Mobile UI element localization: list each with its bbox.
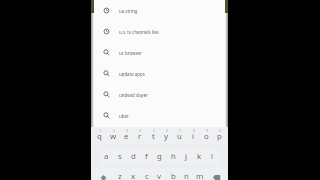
staticText: q (97, 131, 102, 142)
staticText: f (145, 151, 148, 162)
button[interactable]: n (180, 168, 193, 180)
button[interactable]: 0 (213, 127, 226, 144)
staticText: k (197, 151, 202, 162)
button[interactable]: Backspace (206, 168, 226, 180)
staticText: uc browser (119, 50, 142, 56)
button[interactable]: h (167, 148, 180, 165)
staticText: 7 (179, 128, 181, 133)
staticText: 9 (206, 128, 208, 133)
button[interactable]: f (140, 148, 153, 165)
button[interactable]: l (206, 148, 219, 165)
button[interactable]: ua string (94, 0, 225, 21)
staticText: g (157, 151, 162, 162)
staticText: m (196, 171, 204, 180)
button[interactable]: x (127, 168, 140, 180)
staticText: o (204, 131, 209, 142)
button[interactable]: m (193, 168, 206, 180)
staticText: c (145, 171, 149, 180)
staticText: 5 (153, 128, 155, 133)
staticText: p (217, 131, 222, 142)
staticText: update apps (119, 71, 145, 77)
button[interactable]: 7 (173, 127, 186, 144)
staticText: y (164, 131, 169, 142)
staticText: j (185, 151, 188, 162)
button[interactable]: 8 (187, 127, 200, 144)
staticText: d (131, 151, 136, 162)
button[interactable]: uc browser (94, 42, 225, 63)
button[interactable]: c (140, 168, 153, 180)
staticText: 8 (193, 128, 195, 133)
button[interactable]: a (100, 148, 113, 165)
button[interactable]: 2 (107, 127, 120, 144)
staticText: i (192, 131, 195, 142)
button[interactable]: s (113, 148, 126, 165)
staticText: uber (119, 113, 129, 119)
staticText: ua string (119, 8, 138, 14)
staticText: w (110, 131, 117, 142)
button[interactable]: z (113, 168, 126, 180)
button[interactable]: 4 (133, 127, 146, 144)
staticText: v (157, 171, 162, 180)
staticText: a (104, 151, 109, 162)
staticText: e (124, 131, 129, 142)
button[interactable]: j (180, 148, 193, 165)
button[interactable]: 5 (147, 127, 160, 144)
staticText: 3 (126, 128, 128, 133)
button[interactable]: uber (94, 105, 225, 126)
staticText: 6 (166, 128, 168, 133)
staticText: u.s. tv channels live (119, 29, 159, 35)
staticText: n (184, 171, 189, 180)
button[interactable]: u.s. tv channels live (94, 21, 225, 42)
button[interactable]: g (153, 148, 166, 165)
staticText: z (118, 171, 122, 180)
staticText: undead slayer (119, 92, 149, 98)
staticText: 0 (219, 128, 221, 133)
button[interactable]: k (193, 148, 206, 165)
staticText: h (171, 151, 176, 162)
staticText: s (118, 151, 122, 162)
staticText: b (171, 171, 176, 180)
button[interactable]: v (153, 168, 166, 180)
staticText: 2 (113, 128, 115, 133)
button[interactable]: update apps (94, 63, 225, 84)
button[interactable]: b (167, 168, 180, 180)
staticText: t (152, 131, 155, 142)
staticText: u (177, 131, 182, 142)
staticText: r (138, 131, 142, 142)
staticText: 1 (99, 128, 101, 133)
button[interactable]: 9 (200, 127, 213, 144)
staticText: 4 (139, 128, 141, 133)
button[interactable]: d (127, 148, 140, 165)
button[interactable]: undead slayer (94, 84, 225, 105)
staticText: x (131, 171, 136, 180)
button[interactable]: 6 (160, 127, 173, 144)
button[interactable]: 3 (120, 127, 133, 144)
button[interactable]: 1 (93, 127, 106, 144)
button[interactable]: Shift (93, 168, 113, 180)
staticText: l (211, 151, 214, 162)
